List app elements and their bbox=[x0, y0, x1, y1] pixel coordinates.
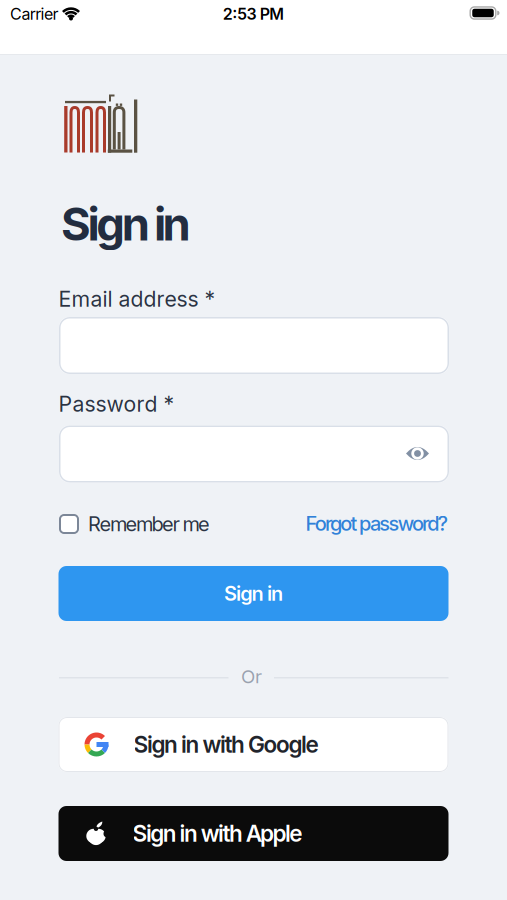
staticText: Carrier bbox=[10, 5, 58, 23]
staticText: Remember me bbox=[88, 512, 210, 536]
staticText: Email address * bbox=[58, 286, 215, 312]
staticText: Forgot password? bbox=[305, 512, 448, 535]
staticText: Or bbox=[241, 665, 262, 687]
button[interactable] bbox=[59, 425, 449, 482]
staticText: Sign in bbox=[61, 197, 191, 251]
staticText: Sign in with Google bbox=[133, 731, 318, 758]
button[interactable]: Remember me bbox=[59, 512, 339, 536]
button[interactable]: Sign in bbox=[58, 566, 448, 621]
staticText: Sign in bbox=[224, 582, 283, 605]
button[interactable]: Forgot password? bbox=[228, 512, 448, 535]
staticText: 2:53 PM bbox=[223, 5, 284, 23]
staticText: Sign in with Apple bbox=[132, 820, 302, 847]
button[interactable]: Sign in with Apple bbox=[58, 806, 448, 861]
button[interactable]: Sign in with Google bbox=[58, 717, 448, 772]
button[interactable] bbox=[404, 443, 430, 463]
staticText: Password * bbox=[58, 391, 174, 417]
button[interactable] bbox=[59, 317, 449, 374]
